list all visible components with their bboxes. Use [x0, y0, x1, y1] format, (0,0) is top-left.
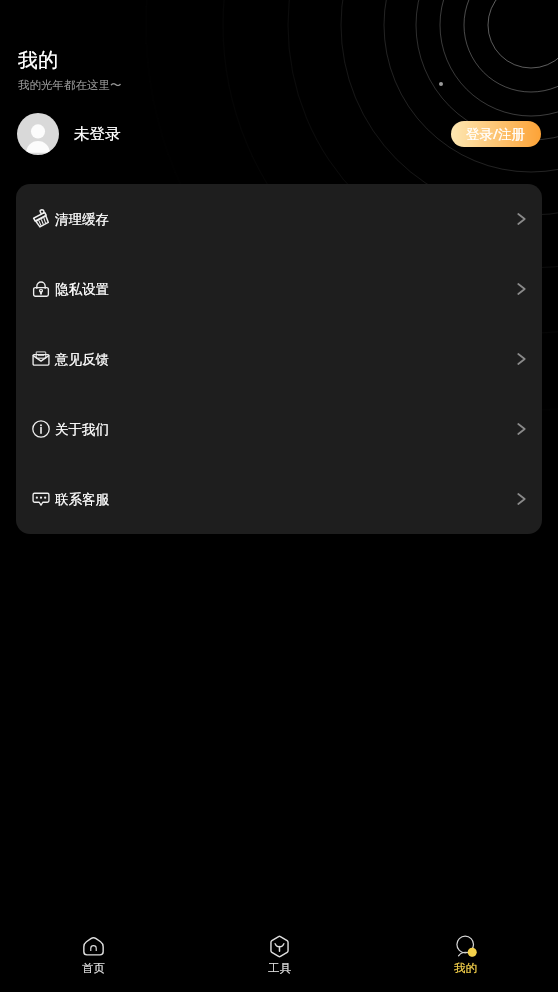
- button[interactable]: Home: [0, 922, 186, 992]
- button[interactable]: 意见反馈: [16, 324, 542, 394]
- staticText: 联系客服: [55, 491, 109, 508]
- staticText: 登录/注册: [466, 125, 526, 143]
- button[interactable]: 关于我们: [16, 394, 542, 464]
- button[interactable]: Mine: [372, 922, 558, 992]
- button[interactable]: Tools: [186, 922, 372, 992]
- button[interactable]: 清理缓存: [16, 184, 542, 254]
- staticText: 清理缓存: [55, 211, 109, 228]
- button[interactable]: 隐私设置: [16, 254, 542, 324]
- staticText: 隐私设置: [55, 281, 109, 298]
- button[interactable]: 联系客服: [16, 464, 542, 534]
- button[interactable]: 未登录: [17, 113, 121, 155]
- staticText: 意见反馈: [55, 351, 109, 368]
- staticText: 首页: [82, 961, 105, 975]
- staticText: 工具: [268, 961, 291, 975]
- staticText: 我的光年都在这里〜: [18, 78, 122, 92]
- button[interactable]: 登录/注册: [451, 121, 541, 147]
- staticText: 我的: [18, 48, 58, 73]
- staticText: 关于我们: [55, 421, 109, 438]
- staticText: 未登录: [74, 124, 121, 144]
- staticText: 我的: [454, 961, 477, 975]
